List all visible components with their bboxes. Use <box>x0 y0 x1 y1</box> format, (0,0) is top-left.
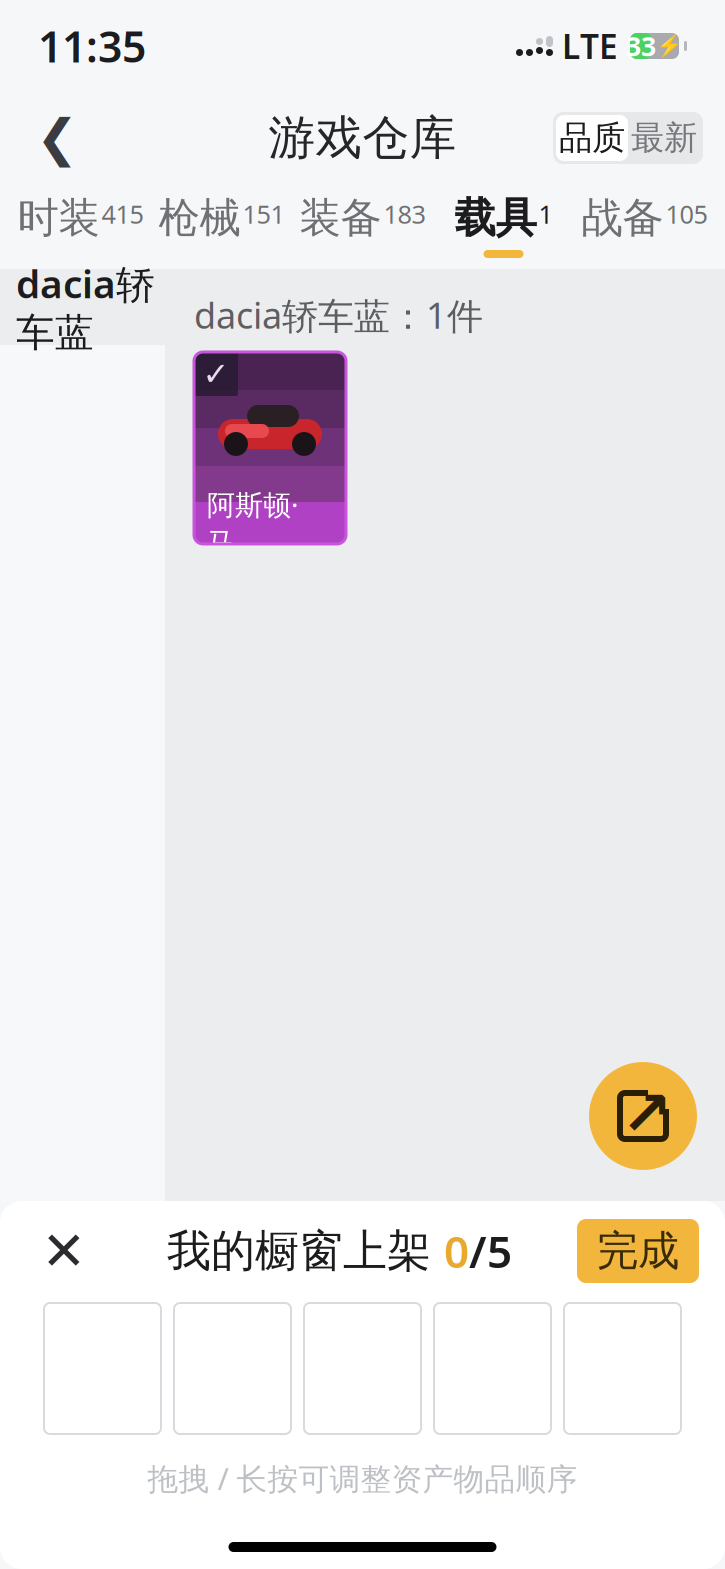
staticText: 品质 <box>559 117 625 158</box>
button[interactable]: 时装 <box>10 184 151 269</box>
button[interactable]: 品质 <box>556 115 628 161</box>
staticText: 装备 <box>299 193 381 243</box>
staticText: 拖拽 / 长按可调整资产物品顺序 <box>147 1458 577 1499</box>
staticText: dacia轿车蓝：1件 <box>194 291 483 339</box>
button[interactable]: 空位 <box>564 1303 681 1434</box>
staticText: 183 <box>383 197 425 231</box>
staticText: 载具 <box>454 193 536 243</box>
button[interactable]: 分享 <box>583 1056 703 1176</box>
staticText: 战备 <box>581 193 663 243</box>
button[interactable]: 空位 <box>434 1303 551 1434</box>
staticText: ✓ <box>202 356 229 392</box>
staticText: ⚡ <box>656 34 683 58</box>
button[interactable]: 空位 <box>174 1303 291 1434</box>
staticText: LTE <box>562 24 618 68</box>
staticText: ✕ <box>41 1221 86 1281</box>
staticText: 时装 <box>17 193 99 243</box>
staticText: 游戏仓库 <box>268 109 456 167</box>
staticText: 151 <box>242 197 284 231</box>
button[interactable]: 载具 <box>433 184 574 269</box>
staticText: /5 <box>469 1222 512 1280</box>
button[interactable]: 完成 <box>577 1219 699 1283</box>
staticText: 完成 <box>597 1226 679 1276</box>
button[interactable]: ✓ <box>194 352 346 544</box>
staticText: 阿斯顿·马… <box>207 486 299 560</box>
staticText: ↗ <box>621 1079 672 1148</box>
staticText: 33 <box>626 28 656 64</box>
staticText: 我的橱窗上架 <box>167 1224 444 1278</box>
button[interactable]: 装备 <box>292 184 433 269</box>
staticText: 415 <box>101 197 143 231</box>
button[interactable]: 枪械 <box>151 184 292 269</box>
button[interactable]: 最新 <box>628 115 700 161</box>
button[interactable]: dacia轿车蓝 <box>0 269 165 345</box>
staticText: 105 <box>665 197 707 231</box>
staticText: dacia轿车蓝 <box>16 257 155 356</box>
button[interactable]: 战备 <box>574 184 715 269</box>
staticText: 最新 <box>631 117 697 158</box>
button[interactable]: 返回 <box>22 103 92 173</box>
staticText: 枪械 <box>158 193 240 243</box>
staticText: 11:35 <box>38 18 146 74</box>
staticText: ❮ <box>36 109 78 167</box>
button[interactable]: 空位 <box>44 1303 161 1434</box>
staticText: 1 <box>538 197 552 231</box>
button[interactable]: 关闭 <box>26 1213 102 1289</box>
button[interactable]: 空位 <box>304 1303 421 1434</box>
staticText: 0 <box>444 1222 469 1280</box>
